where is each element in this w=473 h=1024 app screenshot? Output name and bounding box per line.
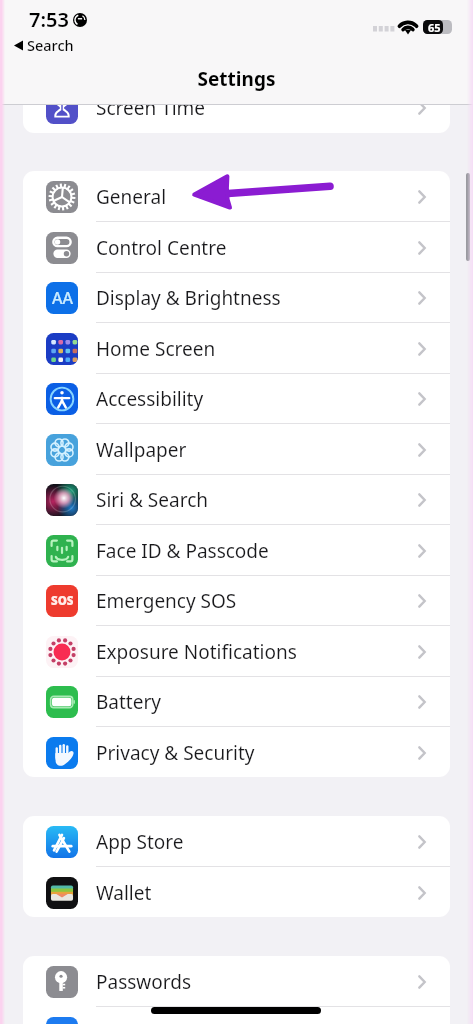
button[interactable]: Home Screen: [23, 323, 450, 374]
staticText: 7:53: [29, 6, 69, 33]
button[interactable]: Mail: [23, 1007, 450, 1024]
button[interactable]: Privacy & Security: [23, 727, 450, 777]
staticText: Passwords: [96, 969, 192, 995]
staticText: Settings: [0, 66, 473, 92]
staticText: Accessibility: [96, 386, 204, 412]
staticText: Home Screen: [96, 336, 216, 362]
staticText: SOS: [51, 593, 74, 609]
staticText: General: [96, 184, 167, 210]
button[interactable]: Battery: [23, 676, 450, 727]
staticText: Wallpaper: [96, 437, 187, 463]
staticText: Siri & Search: [96, 487, 209, 513]
staticText: Privacy & Security: [96, 740, 255, 766]
staticText: Control Centre: [96, 235, 227, 261]
staticText: Screen Time: [96, 95, 206, 121]
button[interactable]: Accessibility: [23, 373, 450, 424]
staticText: 7:53: [29, 6, 69, 33]
button[interactable]: Wallpaper: [23, 424, 450, 475]
button[interactable]: Search: [14, 35, 74, 55]
button[interactable]: Screen Time: [23, 82, 450, 133]
button[interactable]: App Store: [23, 816, 450, 867]
button[interactable]: Wallet: [23, 867, 450, 917]
staticText: Settings: [0, 66, 473, 92]
button[interactable]: Siri & Search: [23, 474, 450, 525]
staticText: 65: [428, 20, 441, 34]
staticText: App Store: [96, 829, 184, 855]
staticText: Battery: [96, 689, 161, 715]
button[interactable]: General: [23, 171, 450, 222]
staticText: Exposure Notifications: [96, 639, 297, 665]
button[interactable]: Passwords: [23, 956, 450, 1007]
staticText: Display & Brightness: [96, 285, 281, 311]
button[interactable]: Exposure Notifications: [23, 626, 450, 677]
button[interactable]: Search: [14, 35, 74, 55]
button[interactable]: Control Centre: [23, 222, 450, 273]
staticText: Search: [27, 35, 74, 55]
staticText: Face ID & Passcode: [96, 538, 269, 564]
staticText: Search: [27, 35, 74, 55]
staticText: 65: [428, 20, 441, 34]
button[interactable]: Face ID & Passcode: [23, 525, 450, 576]
staticText: Wallet: [96, 880, 152, 906]
staticText: Emergency SOS: [96, 588, 237, 614]
staticText: AA: [52, 287, 73, 309]
button[interactable]: SOS: [23, 575, 450, 626]
button[interactable]: AA: [23, 272, 450, 323]
